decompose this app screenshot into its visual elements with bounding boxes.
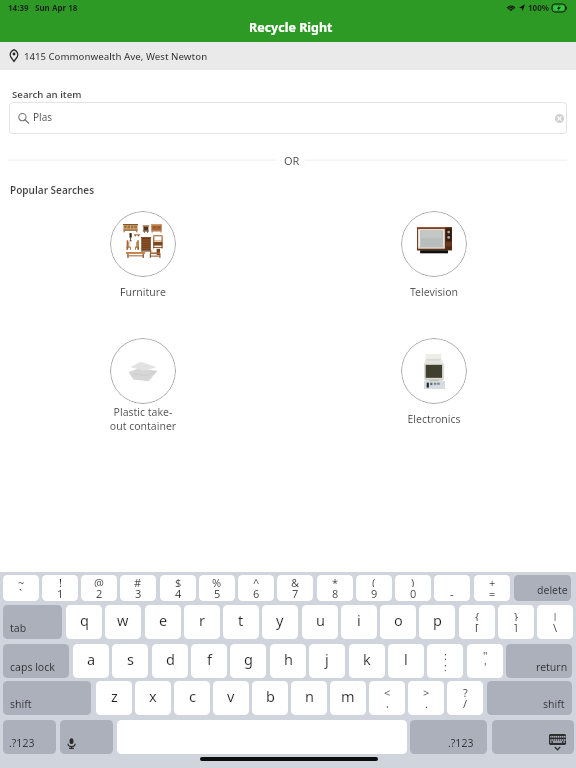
staticText: return (536, 660, 568, 674)
staticText: c (189, 686, 196, 706)
staticText: 100% (528, 2, 549, 13)
button[interactable]: w (105, 605, 141, 639)
staticText: ' (484, 659, 487, 671)
button[interactable]: i (341, 605, 377, 639)
button[interactable]: shift (3, 681, 91, 715)
button[interactable] (83, 209, 203, 279)
staticText: 1415 Commonwealth Ave, West Newton (24, 50, 208, 63)
staticText: Popular Searches (10, 183, 95, 197)
button[interactable]: p (419, 605, 455, 639)
staticText: . (425, 696, 428, 708)
button[interactable]: _ (434, 575, 470, 601)
button[interactable]: k (349, 644, 385, 678)
button[interactable] (83, 336, 203, 406)
button[interactable]: s (112, 644, 148, 678)
staticText: g (244, 649, 253, 669)
staticText: $ (175, 575, 182, 587)
button[interactable]: b (252, 681, 288, 715)
button[interactable]: ) (395, 575, 431, 601)
button[interactable]: v (213, 681, 249, 715)
button[interactable]: " (467, 644, 503, 678)
staticText: ( (372, 575, 376, 587)
staticText: Plas (33, 110, 53, 124)
button[interactable]: + (474, 575, 510, 601)
staticText: q (80, 610, 89, 630)
staticText: w (117, 610, 129, 630)
button[interactable]: $ (160, 575, 196, 601)
button[interactable]: ? (447, 681, 483, 715)
button[interactable]: | (537, 605, 573, 639)
button[interactable]: ! (42, 575, 78, 601)
staticText: ] (514, 620, 518, 632)
button[interactable]: d (152, 644, 188, 678)
button[interactable]: Clear search (555, 114, 564, 123)
staticText: & (291, 575, 300, 587)
button[interactable] (374, 209, 494, 279)
button[interactable]: .?123 (3, 720, 56, 754)
button[interactable]: Hide keyboard (492, 720, 574, 754)
button[interactable]: y (262, 605, 298, 639)
staticText: ? (463, 685, 468, 697)
button[interactable]: < (369, 681, 405, 715)
button[interactable]: & (277, 575, 313, 601)
staticText: i (357, 610, 361, 630)
staticText: f (207, 649, 212, 669)
staticText: } (514, 609, 519, 621)
button[interactable]: m (330, 681, 366, 715)
button[interactable]: shift (487, 681, 572, 715)
button[interactable]: t (223, 605, 259, 639)
button[interactable]: @ (81, 575, 117, 601)
staticText: p (433, 610, 442, 630)
staticText: 3 (135, 586, 142, 598)
staticText: z (111, 686, 118, 706)
staticText: Furniture (83, 285, 203, 299)
button[interactable]: ( (356, 575, 392, 601)
staticText: y (276, 610, 284, 630)
button[interactable]: * (317, 575, 353, 601)
button[interactable]: o (380, 605, 416, 639)
button[interactable]: z (96, 681, 132, 715)
button[interactable]: ~ (3, 575, 39, 601)
staticText: e (159, 610, 168, 630)
button[interactable]: { (459, 605, 495, 639)
button[interactable]: a (73, 644, 109, 678)
staticText: b (266, 686, 275, 706)
button[interactable]: > (408, 681, 444, 715)
button[interactable]: Plas (9, 102, 567, 134)
button[interactable]: g (230, 644, 266, 678)
button[interactable]: h (270, 644, 306, 678)
staticText: m (341, 686, 355, 706)
button[interactable]: caps lock (3, 644, 69, 678)
button[interactable]: tab (3, 605, 62, 639)
button[interactable]: 1415 Commonwealth Ave, West Newton (0, 42, 576, 70)
button[interactable]: j (309, 644, 345, 678)
button[interactable]: c (174, 681, 210, 715)
button[interactable]: % (199, 575, 235, 601)
button[interactable]: .?123 (410, 720, 487, 754)
button[interactable]: q (66, 605, 102, 639)
button[interactable] (374, 336, 494, 406)
staticText: | (552, 609, 559, 621)
button[interactable]: delete (514, 575, 571, 601)
button[interactable]: Dictation (60, 720, 113, 754)
staticText: - (450, 586, 454, 598)
staticText: v (227, 686, 235, 706)
staticText: 14:39 (8, 2, 29, 13)
button[interactable]: e (145, 605, 181, 639)
button[interactable]: x (135, 681, 171, 715)
button[interactable]: : (427, 644, 463, 678)
staticText: [ (475, 620, 479, 632)
button[interactable]: l (388, 644, 424, 678)
button[interactable]: ^ (238, 575, 274, 601)
button[interactable]: n (291, 681, 327, 715)
staticText: ^ (253, 575, 260, 587)
button[interactable]: r (184, 605, 220, 639)
button[interactable]: # (120, 575, 156, 601)
staticText: caps lock (10, 660, 55, 674)
button[interactable]: f (191, 644, 227, 678)
button[interactable]: } (498, 605, 534, 639)
button[interactable]: u (302, 605, 338, 639)
staticText: / (463, 696, 468, 708)
button[interactable]: return (506, 644, 572, 678)
